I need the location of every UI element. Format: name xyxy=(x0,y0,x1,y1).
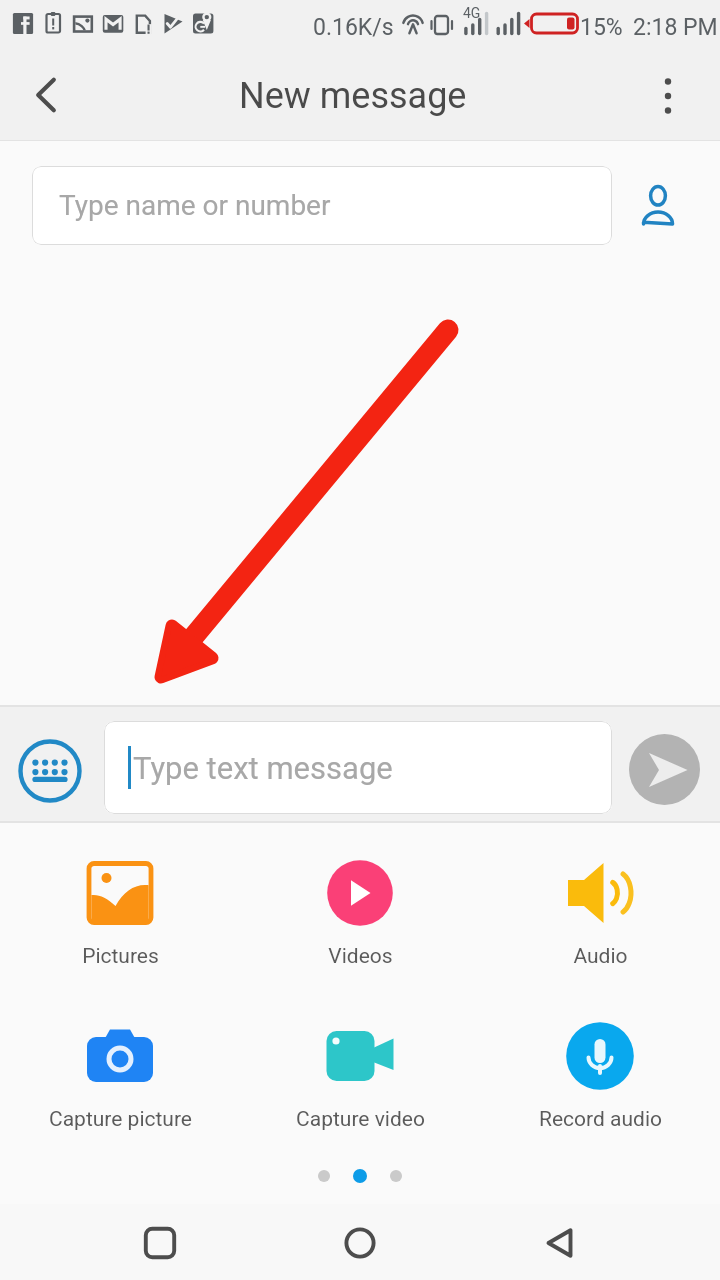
staticText: Record audio xyxy=(539,1107,662,1132)
staticText: 2:18 PM xyxy=(633,14,718,41)
button[interactable]: Recent apps xyxy=(100,1204,220,1280)
button[interactable]: More options xyxy=(632,60,704,132)
button[interactable]: Pictures xyxy=(0,858,240,969)
staticText: New message xyxy=(239,75,467,117)
button[interactable]: Home xyxy=(300,1204,420,1280)
staticText: Audio xyxy=(573,944,628,969)
staticText: Capture picture xyxy=(49,1107,192,1132)
button[interactable]: Back xyxy=(8,57,84,133)
staticText: Videos xyxy=(328,944,393,969)
button[interactable]: Capture video xyxy=(240,1021,480,1132)
button[interactable]: Add contact xyxy=(632,183,684,235)
button[interactable]: Record audio xyxy=(480,1021,720,1132)
staticText: Type name or number xyxy=(59,189,331,222)
button[interactable]: Videos xyxy=(240,858,480,969)
staticText: 15% xyxy=(580,14,623,41)
staticText: Capture video xyxy=(296,1107,425,1132)
button[interactable]: Type name or number xyxy=(32,166,612,245)
staticText: 0.16K/s xyxy=(313,14,394,41)
button[interactable]: Audio xyxy=(480,858,720,969)
button[interactable]: Send xyxy=(629,734,700,805)
button[interactable]: Keyboard xyxy=(18,739,82,803)
button[interactable]: Type text message xyxy=(104,721,612,814)
button[interactable]: Capture picture xyxy=(0,1021,240,1132)
staticText: Pictures xyxy=(82,944,159,969)
staticText: Type text message xyxy=(133,750,393,786)
button[interactable]: Back xyxy=(500,1204,620,1280)
staticText: 4G xyxy=(463,5,481,21)
